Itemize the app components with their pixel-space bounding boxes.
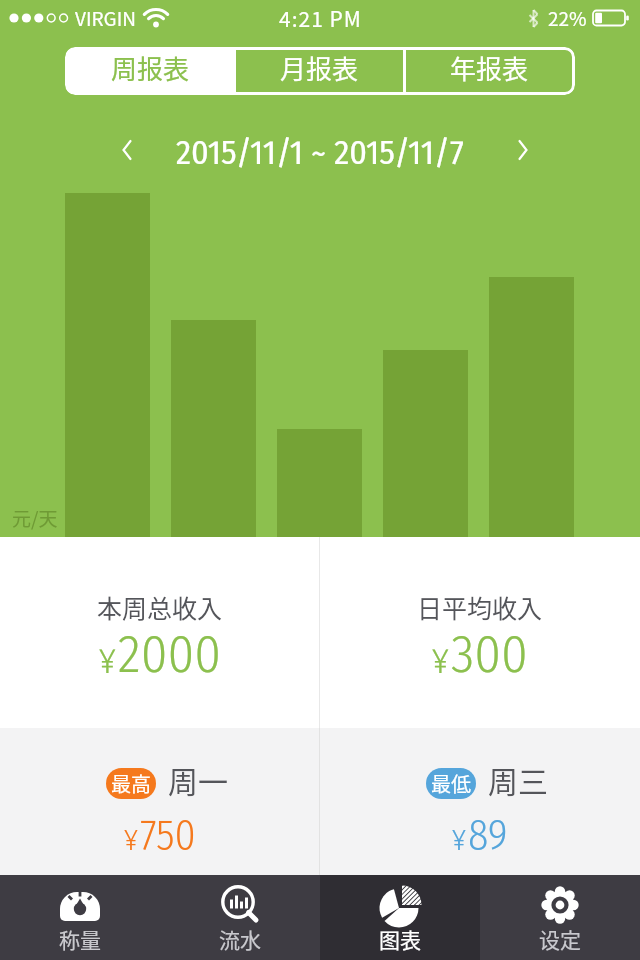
- staticText: 2000: [118, 622, 221, 686]
- staticText: 2015/11/1 ~ 2015/11/7: [176, 132, 464, 168]
- staticText: 设定: [539, 924, 581, 954]
- staticText: VIRGIN: [75, 4, 136, 32]
- button[interactable]: 图表: [320, 875, 480, 960]
- staticText: 89: [468, 811, 508, 861]
- button[interactable]: 周报表: [67, 49, 233, 93]
- staticText: ¥: [452, 822, 466, 858]
- staticText: 22%: [548, 4, 587, 32]
- staticText: ¥: [124, 822, 138, 858]
- staticText: 最低: [431, 769, 471, 798]
- staticText: 750: [140, 811, 196, 861]
- staticText: 最高: [111, 769, 151, 798]
- staticText: 年报表: [450, 49, 529, 87]
- button[interactable]: 最低: [320, 728, 640, 875]
- staticText: 本周总收入: [97, 589, 223, 625]
- staticText: 4:21 PM: [279, 3, 362, 33]
- staticText: 周三: [488, 758, 548, 801]
- button[interactable]: 称量: [0, 875, 160, 960]
- button[interactable]: 本周总收入: [0, 537, 319, 728]
- staticText: 月报表: [280, 49, 359, 87]
- staticText: ¥: [99, 639, 116, 682]
- button[interactable]: [512, 137, 532, 163]
- staticText: ¥: [432, 639, 449, 682]
- button[interactable]: 设定: [480, 875, 640, 960]
- button[interactable]: 年报表: [406, 49, 573, 93]
- staticText: 日平均收入: [417, 589, 543, 625]
- button[interactable]: 最高: [0, 728, 319, 875]
- staticText: 流水: [219, 924, 261, 954]
- staticText: 图表: [379, 924, 421, 954]
- staticText: 周报表: [111, 49, 190, 87]
- button[interactable]: [118, 137, 138, 163]
- button[interactable]: 月报表: [236, 49, 403, 93]
- staticText: 称量: [59, 924, 101, 954]
- staticText: 300: [451, 622, 528, 686]
- button[interactable]: 日平均收入: [320, 537, 640, 728]
- staticText: 元/天: [12, 504, 58, 532]
- button[interactable]: 流水: [160, 875, 320, 960]
- staticText: 周一: [168, 758, 228, 801]
